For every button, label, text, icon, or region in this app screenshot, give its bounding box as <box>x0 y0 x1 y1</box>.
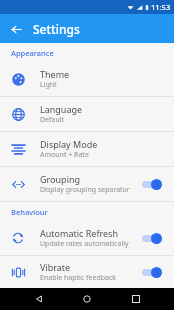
button[interactable]: Back <box>6 19 26 39</box>
button[interactable]: Language <box>0 97 174 131</box>
staticText: 11:53 <box>151 2 171 12</box>
button[interactable]: Grouping <box>0 167 174 201</box>
button[interactable]: Recent apps <box>126 289 146 309</box>
button[interactable]: Vibrate <box>0 256 174 288</box>
button[interactable]: Vibrate <box>140 263 166 281</box>
button[interactable]: Grouping <box>140 175 166 193</box>
staticText: Enable haptic feedback <box>40 273 117 283</box>
staticText: Theme <box>40 68 70 80</box>
staticText: Grouping <box>40 173 81 185</box>
staticText: Language <box>40 103 83 115</box>
staticText: Update rates automatically <box>40 239 129 249</box>
button[interactable]: Back <box>29 289 49 309</box>
staticText: Settings <box>33 21 80 37</box>
staticText: Display grouping separator <box>40 185 130 195</box>
button[interactable]: Automatic Refresh <box>0 221 174 255</box>
staticText: Amount + Rate <box>40 150 89 160</box>
button[interactable]: Theme <box>0 62 174 96</box>
staticText: Vibrate <box>40 261 71 273</box>
staticText: Appearance <box>11 48 54 58</box>
staticText: Light <box>40 80 57 90</box>
staticText: Display Mode <box>40 138 98 150</box>
staticText: Behaviour <box>11 207 48 217</box>
button[interactable]: Automatic Refresh <box>140 229 166 247</box>
staticText: Default <box>40 115 65 125</box>
button[interactable]: Display Mode <box>0 132 174 166</box>
staticText: Automatic Refresh <box>40 227 118 239</box>
button[interactable]: Home <box>77 289 97 309</box>
